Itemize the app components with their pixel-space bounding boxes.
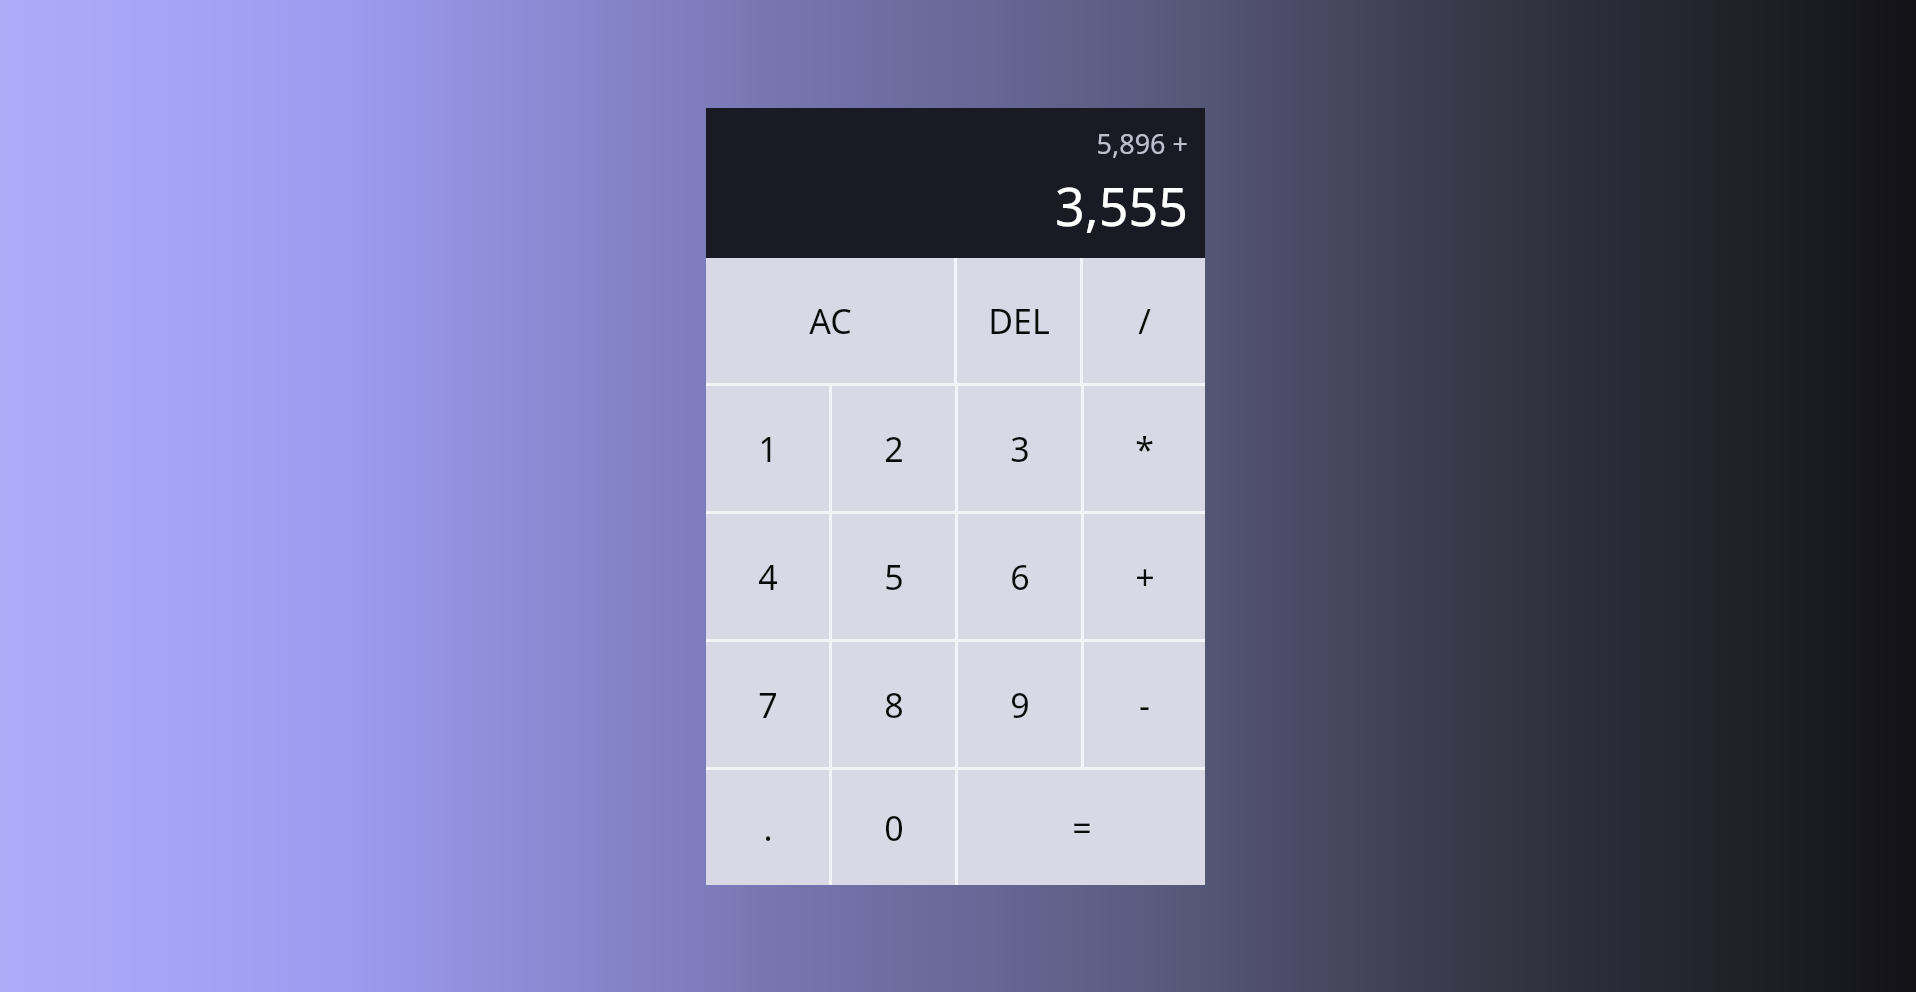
button[interactable]: 4: [706, 514, 829, 639]
staticText: 2: [884, 426, 904, 472]
staticText: 1: [758, 426, 778, 472]
staticText: 8: [884, 682, 904, 728]
button[interactable]: -: [1084, 642, 1205, 767]
button[interactable]: 1: [706, 386, 829, 511]
staticText: +: [1135, 554, 1155, 600]
button[interactable]: DEL: [957, 258, 1080, 383]
staticText: AC: [809, 298, 852, 344]
staticText: 5: [884, 554, 904, 600]
staticText: /: [1138, 298, 1151, 344]
button[interactable]: *: [1084, 386, 1205, 511]
button[interactable]: 8: [832, 642, 955, 767]
button[interactable]: 5: [832, 514, 955, 639]
button[interactable]: .: [706, 770, 829, 885]
button[interactable]: 6: [958, 514, 1081, 639]
staticText: DEL: [988, 298, 1050, 344]
staticText: .: [763, 805, 773, 851]
staticText: 3,555: [1055, 170, 1188, 241]
button[interactable]: +: [1084, 514, 1205, 639]
button[interactable]: 7: [706, 642, 829, 767]
button[interactable]: 3: [958, 386, 1081, 511]
staticText: *: [1135, 426, 1154, 472]
staticText: 5,896 +: [1096, 125, 1188, 162]
button[interactable]: /: [1083, 258, 1205, 383]
button[interactable]: 9: [958, 642, 1081, 767]
button[interactable]: =: [958, 770, 1205, 885]
staticText: 6: [1010, 554, 1030, 600]
button[interactable]: 0: [832, 770, 955, 885]
staticText: 4: [758, 554, 778, 600]
button[interactable]: AC: [706, 258, 954, 383]
button[interactable]: 2: [832, 386, 955, 511]
staticText: 7: [758, 682, 778, 728]
staticText: 0: [884, 805, 904, 851]
staticText: 9: [1010, 682, 1030, 728]
staticText: 3: [1010, 426, 1030, 472]
staticText: =: [1072, 805, 1092, 851]
staticText: -: [1139, 682, 1150, 728]
